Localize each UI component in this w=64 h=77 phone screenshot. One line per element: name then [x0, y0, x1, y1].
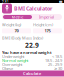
staticText: 175: [44, 28, 50, 33]
staticText: 70: [14, 28, 18, 33]
staticText: Calculate: [23, 71, 41, 76]
staticText: Obese: [2, 66, 13, 71]
button[interactable]: Calculate: [0, 70, 64, 76]
staticText: 9:41: [2, 0, 9, 3]
button[interactable]: Imperial: [32, 15, 61, 19]
staticText: ▮▮▮: [59, 0, 62, 3]
staticText: Underweight: [2, 54, 24, 59]
staticText: 18.5 - 24.9: [45, 58, 62, 63]
staticText: Imperial: [39, 14, 54, 20]
staticText: < 18.5: [52, 54, 62, 59]
staticText: 25 - 29.9: [48, 62, 62, 67]
button[interactable]: Metric: [3, 15, 32, 19]
staticText: Normal weight: [2, 58, 28, 63]
staticText: Overweight: [2, 62, 22, 67]
staticText: Height (cm): [33, 22, 53, 27]
staticText: BMI (Body Mass Index): [2, 35, 43, 41]
staticText: You have a normal weight: [2, 50, 52, 55]
staticText: BMI Calculator: [14, 5, 52, 12]
staticText: Metric: [11, 14, 23, 20]
staticText: ≥ 30: [54, 66, 62, 71]
staticText: Weight (kg): [2, 22, 21, 27]
staticText: 22.9: [25, 41, 39, 49]
